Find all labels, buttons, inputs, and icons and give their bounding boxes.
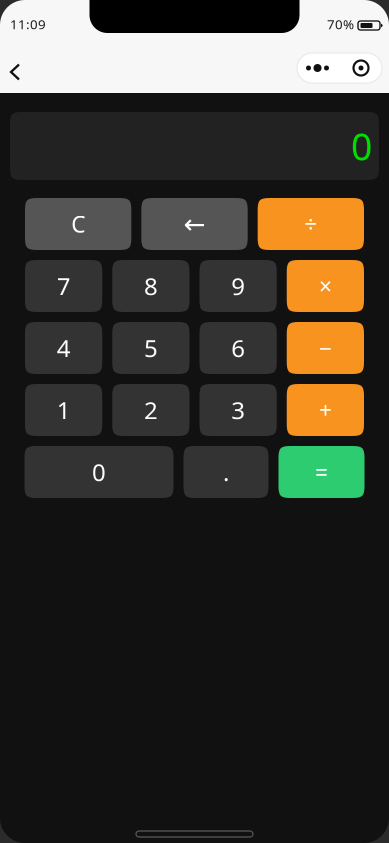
button[interactable]: 4 <box>25 322 102 374</box>
button[interactable]: More options <box>297 48 382 83</box>
button[interactable]: − <box>287 322 364 374</box>
staticText: + <box>319 395 332 425</box>
button[interactable]: ÷ <box>258 198 364 250</box>
staticText: ÷ <box>304 209 317 239</box>
button[interactable]: 0 <box>24 446 173 498</box>
button[interactable]: = <box>278 446 364 498</box>
staticText: 6 <box>231 332 245 364</box>
button[interactable]: . <box>183 446 268 498</box>
staticText: 70% <box>327 15 354 33</box>
staticText: 0 <box>92 456 106 488</box>
staticText: C <box>71 209 85 239</box>
staticText: 0 <box>351 121 372 171</box>
staticText: − <box>319 333 332 363</box>
staticText: = <box>315 457 328 487</box>
staticText: 9 <box>231 270 245 302</box>
button[interactable]: 1 <box>25 384 102 436</box>
button[interactable]: 6 <box>199 322 277 374</box>
staticText: ← <box>183 209 205 239</box>
button[interactable]: 2 <box>112 384 189 436</box>
staticText: 5 <box>144 332 158 364</box>
button[interactable]: 8 <box>112 260 189 312</box>
staticText: 4 <box>57 332 71 364</box>
staticText: 11:09 <box>10 15 46 33</box>
button[interactable]: 9 <box>199 260 277 312</box>
button[interactable]: C <box>25 198 131 250</box>
button[interactable]: Back <box>0 48 30 89</box>
staticText: 3 <box>231 394 245 426</box>
staticText: . <box>223 456 229 488</box>
staticText: 1 <box>57 394 71 426</box>
button[interactable]: + <box>287 384 364 436</box>
button[interactable]: 5 <box>112 322 189 374</box>
button[interactable]: 3 <box>199 384 277 436</box>
button[interactable]: ← <box>141 198 248 250</box>
staticText: 8 <box>144 270 158 302</box>
staticText: 7 <box>57 270 71 302</box>
button[interactable]: × <box>287 260 364 312</box>
staticText: 2 <box>144 394 158 426</box>
staticText: × <box>319 271 332 301</box>
button[interactable]: 7 <box>25 260 102 312</box>
